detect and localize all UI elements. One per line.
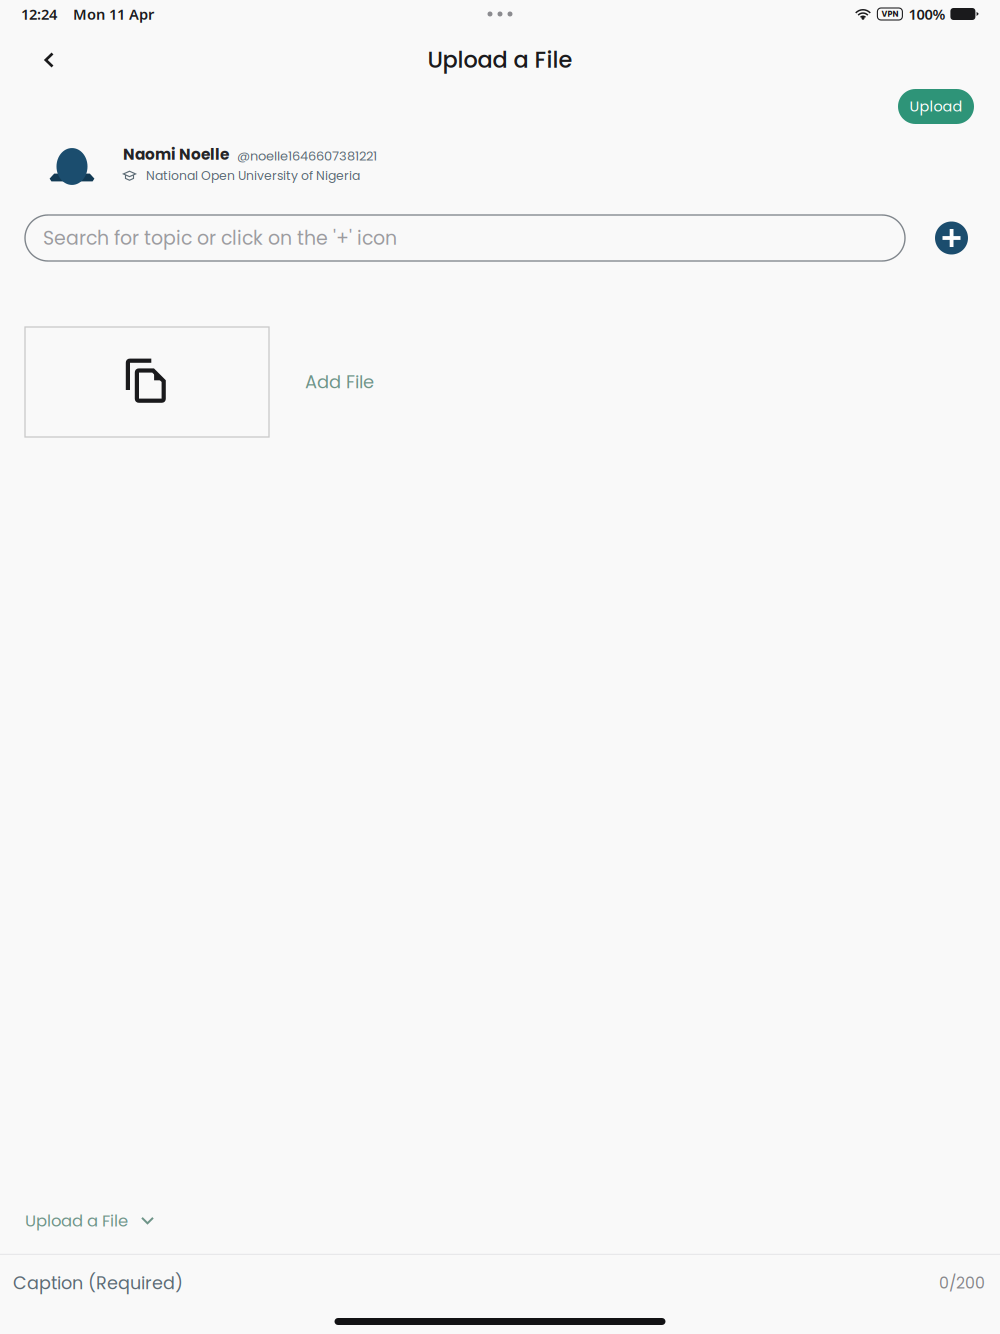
staticText: Naomi Noelle <box>123 144 229 165</box>
button[interactable]: Add File <box>305 369 374 394</box>
staticText: Upload <box>909 96 962 117</box>
staticText: VPN <box>881 8 898 20</box>
staticText: @noelle1646607381221 <box>237 147 377 165</box>
button[interactable]: Upload <box>898 89 974 124</box>
staticText: Search for topic or click on the '+' ico… <box>43 225 397 251</box>
staticText: Add File <box>305 369 374 394</box>
button[interactable]: Back <box>27 41 71 79</box>
staticText: 0/200 <box>939 1272 985 1294</box>
staticText: Upload a File <box>427 44 572 76</box>
button[interactable]: Add topic <box>935 221 968 254</box>
button[interactable]: Search for topic or click on the '+' ico… <box>25 215 905 261</box>
button[interactable]: Add file <box>25 327 269 437</box>
staticText: Mon 11 Apr <box>73 4 154 24</box>
staticText: Upload a File <box>25 1209 128 1232</box>
button[interactable]: Upload a File <box>0 1192 1000 1254</box>
staticText: 100% <box>908 4 945 24</box>
staticText: Caption (Required) <box>13 1271 183 1295</box>
staticText: National Open University of Nigeria <box>146 167 360 184</box>
staticText: 12:24 <box>21 4 57 24</box>
